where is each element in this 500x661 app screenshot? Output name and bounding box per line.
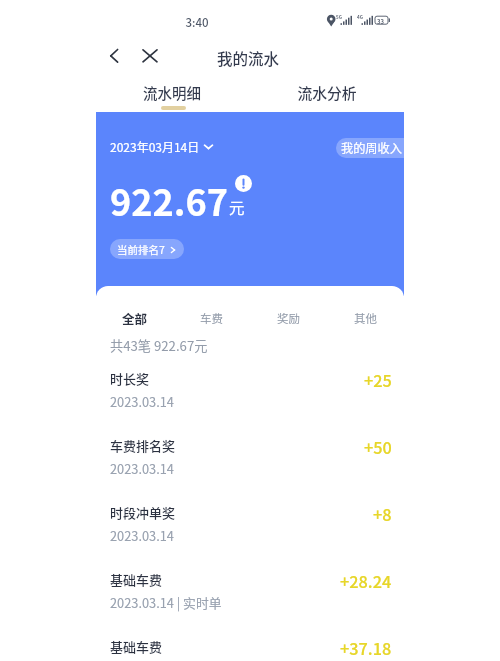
button[interactable]: Back	[100, 43, 128, 71]
button[interactable]: 我的周收入	[336, 138, 404, 158]
staticText: +8	[373, 502, 392, 526]
staticText: 5G	[336, 14, 342, 21]
staticText: +28.24	[340, 569, 392, 593]
button[interactable]: 奖励	[250, 307, 327, 329]
staticText: 车费排名奖	[110, 436, 176, 455]
staticText: 3:40	[167, 14, 227, 30]
staticText: 基础车费	[110, 637, 163, 656]
button[interactable]: 其他	[327, 307, 404, 329]
staticText: 2023.03.14 | 实时单	[110, 593, 222, 612]
staticText: 我的周收入	[341, 139, 402, 157]
staticText: 基础车费	[110, 570, 163, 589]
button[interactable]: 当前排名7	[110, 239, 184, 259]
staticText: 其他	[354, 310, 377, 327]
button[interactable]: 流水明细	[132, 81, 212, 103]
staticText: 2023.03.14	[110, 392, 174, 411]
button[interactable]: 时长奖	[96, 369, 404, 415]
staticText: 共43笔 922.67元	[110, 336, 208, 355]
button[interactable]: Close	[136, 43, 164, 71]
staticText: +37.18	[340, 636, 392, 660]
staticText: 33	[377, 17, 385, 26]
staticText: 时段冲单奖	[110, 503, 176, 522]
staticText: 元	[229, 196, 245, 218]
staticText: +25	[364, 368, 392, 392]
staticText: 当前排名7	[117, 242, 165, 257]
button[interactable]: 车费	[173, 307, 250, 329]
staticText: 奖励	[277, 310, 300, 327]
staticText: 流水分析	[287, 82, 367, 103]
button[interactable]: 流水分析	[287, 81, 367, 103]
staticText: +50	[364, 435, 392, 459]
staticText: 2023.03.14	[110, 459, 174, 478]
staticText: 全部	[122, 309, 148, 327]
button[interactable]: 全部	[96, 307, 173, 329]
button[interactable]: 基础车费	[96, 570, 404, 616]
staticText: 车费	[200, 310, 223, 327]
staticText: 4G	[357, 14, 363, 21]
staticText: 2023年03月14日	[110, 138, 200, 155]
staticText: 流水明细	[132, 82, 212, 103]
button[interactable]: 时段冲单奖	[96, 503, 404, 549]
staticText: 2023.03.14	[110, 526, 174, 545]
button[interactable]: Info	[235, 175, 252, 192]
button[interactable]: 2023年03月14日	[110, 137, 214, 156]
button[interactable]: 基础车费	[96, 637, 404, 661]
staticText: 我的流水	[188, 47, 308, 69]
staticText: 922.67	[110, 174, 228, 226]
staticText: 时长奖	[110, 369, 150, 388]
button[interactable]: 车费排名奖	[96, 436, 404, 482]
